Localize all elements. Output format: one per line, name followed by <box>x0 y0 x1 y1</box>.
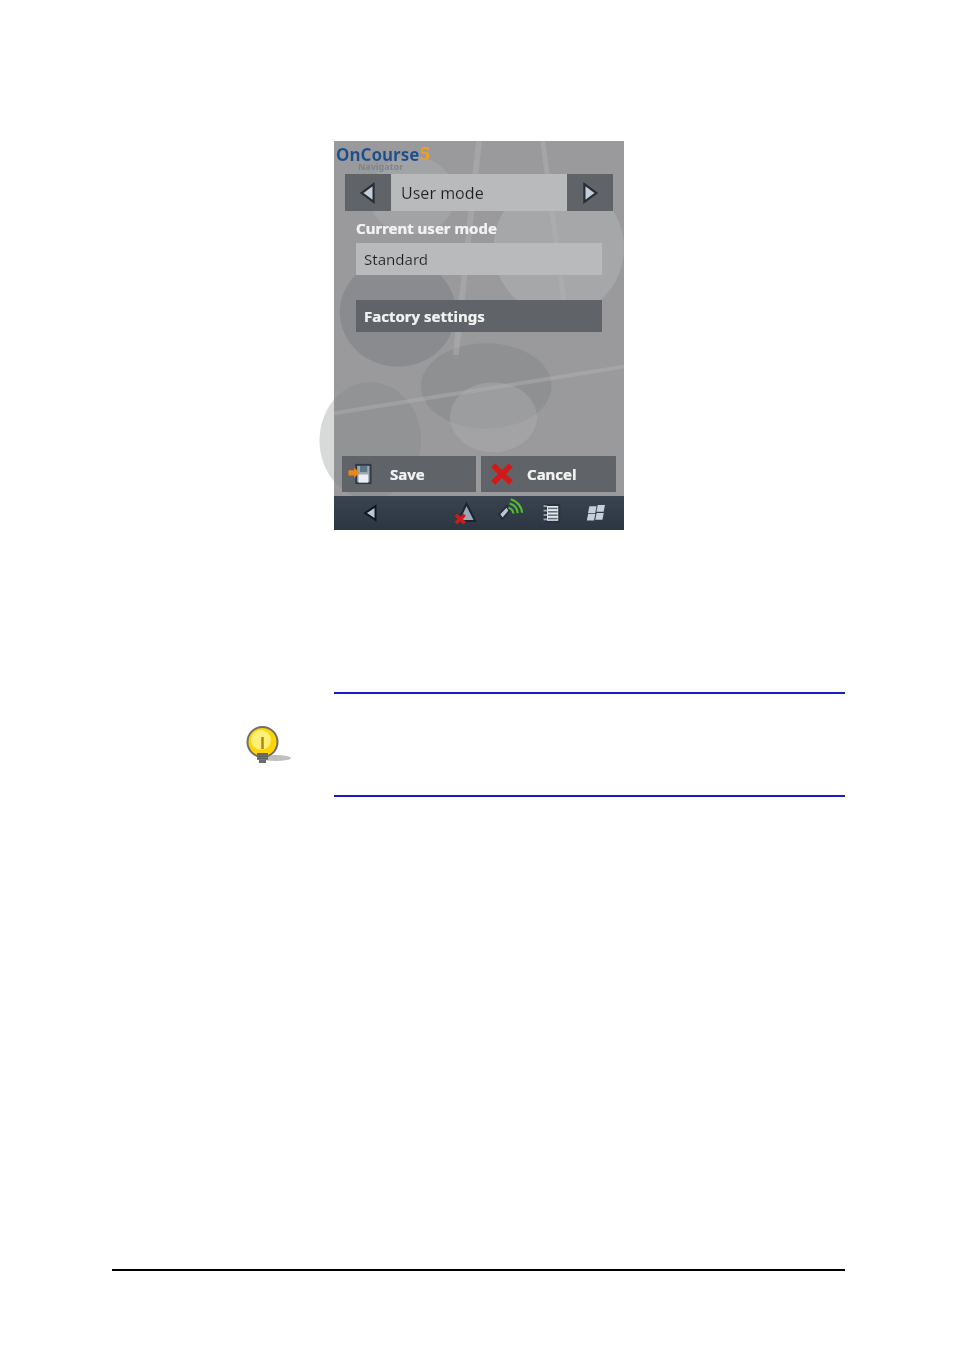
other: Next page <box>580 183 600 203</box>
staticText: 5 <box>420 141 431 166</box>
staticText: Factory settings <box>364 306 485 326</box>
button[interactable]: Signal <box>487 496 530 530</box>
button[interactable]: Cancel <box>481 456 616 492</box>
staticText: OnCourse <box>336 143 420 166</box>
button[interactable]: Save <box>342 456 476 492</box>
staticText: Save <box>390 464 425 484</box>
button[interactable]: Notes <box>530 496 574 530</box>
button[interactable]: Back <box>350 496 391 530</box>
staticText: Current user mode <box>356 218 497 238</box>
button[interactable]: Standard <box>356 243 602 275</box>
staticText: Cancel <box>527 464 577 484</box>
button[interactable]: Previous page <box>345 174 391 211</box>
staticText: Standard <box>364 249 429 269</box>
button[interactable]: Start menu <box>574 496 618 530</box>
button[interactable]: Next page <box>567 174 613 211</box>
staticText: Navigator <box>358 160 404 172</box>
button[interactable]: Factory settings <box>356 300 602 332</box>
button[interactable]: GPS off <box>444 496 487 530</box>
other: Previous page <box>358 183 378 203</box>
button[interactable]: User mode <box>391 174 567 211</box>
staticText: User mode <box>401 182 484 204</box>
